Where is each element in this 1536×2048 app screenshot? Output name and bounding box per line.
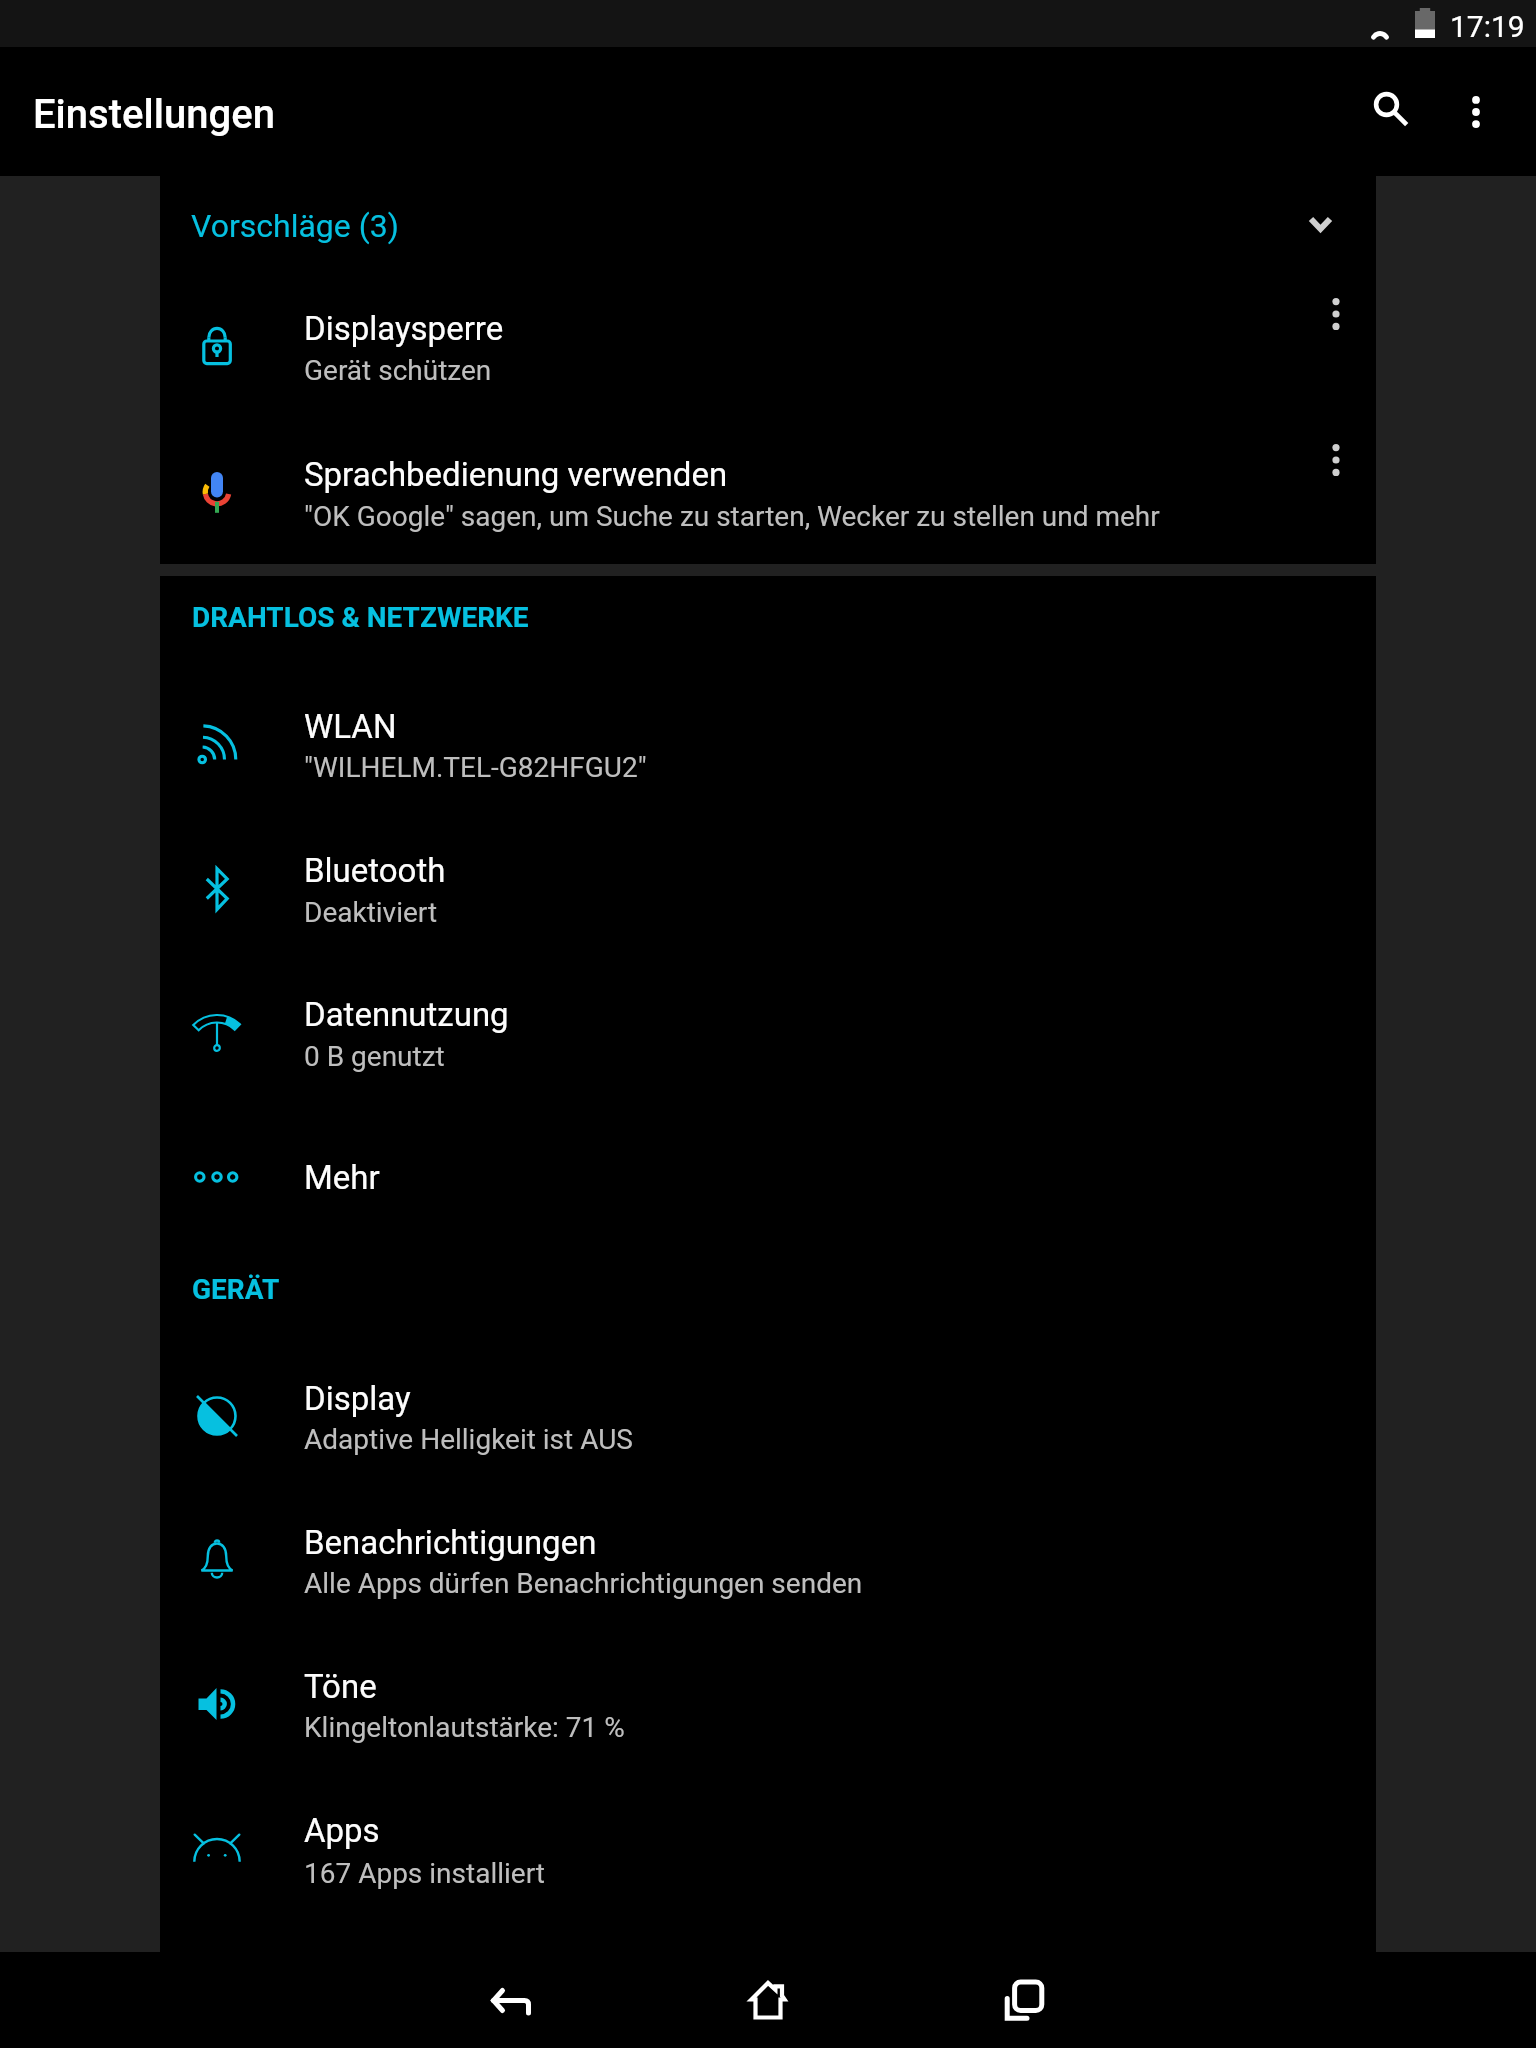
- button[interactable]: Vorschläge einklappen: [1272, 184, 1368, 264]
- button[interactable]: Apps: [160, 1795, 1376, 1938]
- button[interactable]: Suchen: [1343, 62, 1439, 158]
- button[interactable]: Benachrichtigungen: [160, 1507, 1376, 1650]
- staticText: Mehr: [304, 1158, 380, 1197]
- staticText: Klingeltonlautstärke: 71 %: [304, 1711, 625, 1744]
- button[interactable]: Weitere Optionen: [1428, 64, 1524, 160]
- staticText: 167 Apps installiert: [304, 1857, 545, 1890]
- staticText: GERÄT: [192, 1273, 280, 1306]
- button[interactable]: Bluetooth: [160, 835, 1376, 978]
- button[interactable]: Zurück: [448, 1952, 576, 2048]
- staticText: Datennutzung: [304, 995, 509, 1034]
- staticText: Sprachbedienung verwenden: [304, 455, 728, 494]
- button[interactable]: Übersicht: [960, 1952, 1088, 2048]
- staticText: Vorschläge (3): [191, 207, 399, 245]
- button[interactable]: Vorschlag-Optionen: [1296, 420, 1376, 500]
- staticText: Gerät schützen: [304, 354, 492, 387]
- button[interactable]: Sprachbedienung verwenden: [160, 439, 1376, 585]
- staticText: "WILHELM.TEL-G82HFGU2": [304, 751, 647, 784]
- button[interactable]: WLAN: [160, 691, 1376, 834]
- staticText: 17:19: [1450, 9, 1525, 44]
- button[interactable]: Startbildschirm: [704, 1952, 832, 2048]
- staticText: Deaktiviert: [304, 896, 438, 929]
- button[interactable]: Töne: [160, 1651, 1376, 1794]
- staticText: WLAN: [304, 707, 397, 746]
- staticText: Adaptive Helligkeit ist AUS: [304, 1423, 633, 1456]
- staticText: Displaysperre: [304, 309, 504, 348]
- button[interactable]: Mehr: [160, 1142, 1376, 1262]
- button[interactable]: Vorschläge (3): [160, 176, 1376, 272]
- button[interactable]: Displaysperre: [160, 293, 1376, 439]
- button[interactable]: Display: [160, 1363, 1376, 1506]
- staticText: Benachrichtigungen: [304, 1523, 597, 1562]
- button[interactable]: Datennutzung: [160, 979, 1376, 1122]
- staticText: Display: [304, 1379, 411, 1418]
- staticText: Töne: [304, 1667, 377, 1706]
- button[interactable]: Vorschlag-Optionen: [1296, 274, 1376, 354]
- staticText: "OK Google" sagen, um Suche zu starten, …: [304, 500, 1160, 533]
- staticText: DRAHTLOS & NETZWERKE: [192, 601, 529, 634]
- staticText: Bluetooth: [304, 851, 446, 890]
- staticText: Alle Apps dürfen Benachrichtigungen send…: [304, 1567, 863, 1600]
- staticText: Apps: [304, 1811, 380, 1850]
- staticText: Einstellungen: [33, 91, 275, 138]
- staticText: 0 B genutzt: [304, 1040, 445, 1073]
